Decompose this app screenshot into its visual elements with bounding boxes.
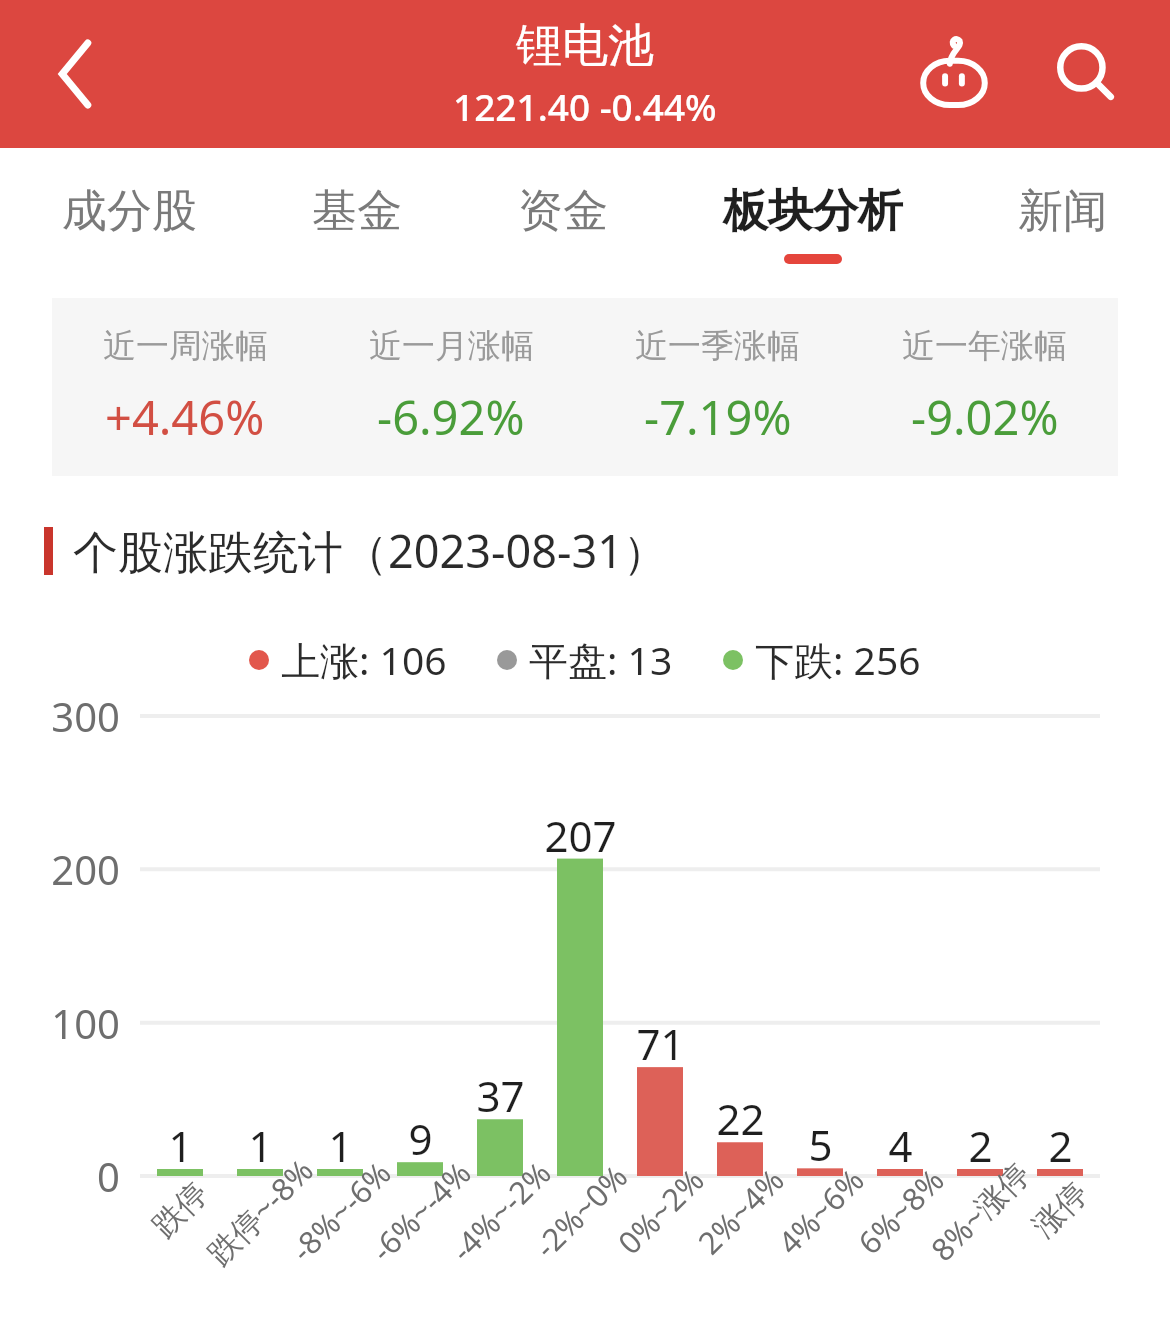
- staticText: 成分股: [62, 183, 197, 240]
- button[interactable]: 近一周涨幅: [52, 298, 318, 476]
- staticText: 新闻: [1018, 183, 1108, 240]
- staticText: -6%~-4%: [361, 1152, 480, 1270]
- staticText: 4: [888, 1117, 913, 1174]
- staticText: 1: [248, 1117, 273, 1174]
- button[interactable]: 资金: [512, 177, 614, 270]
- staticText: 近一月涨幅: [369, 325, 534, 367]
- button[interactable]: 近一月涨幅: [318, 298, 584, 476]
- staticText: -7.19%: [644, 385, 792, 449]
- staticText: 0: [97, 1149, 120, 1203]
- button[interactable]: 近一季涨幅: [584, 298, 851, 476]
- staticText: 跌停: [144, 1174, 216, 1245]
- staticText: -6.92%: [377, 385, 525, 449]
- button[interactable]: 平盘: 13: [497, 633, 673, 686]
- button[interactable]: Search: [1038, 26, 1134, 122]
- button[interactable]: 近一年涨幅: [851, 298, 1118, 476]
- staticText: 2: [1048, 1117, 1073, 1174]
- staticText: 37: [476, 1067, 525, 1124]
- staticText: 1: [168, 1117, 193, 1174]
- button[interactable]: 上涨: 106: [249, 633, 447, 686]
- staticText: 207: [544, 807, 617, 864]
- staticText: 近一周涨幅: [103, 325, 268, 367]
- button[interactable]: 下跌: 256: [723, 633, 921, 686]
- staticText: 5: [808, 1116, 833, 1173]
- staticText: 4%~6%: [768, 1159, 872, 1263]
- staticText: 平盘: 13: [529, 633, 673, 686]
- button[interactable]: AI assistant: [906, 26, 1002, 122]
- staticText: 下跌: 256: [755, 633, 921, 686]
- staticText: -8%~-6%: [281, 1152, 400, 1270]
- staticText: 200: [51, 842, 120, 896]
- button[interactable]: 基金: [306, 177, 408, 270]
- staticText: 近一季涨幅: [635, 325, 800, 367]
- staticText: 近一年涨幅: [902, 325, 1067, 367]
- staticText: 100: [51, 996, 120, 1050]
- staticText: 资金: [518, 183, 608, 240]
- staticText: 71: [636, 1015, 685, 1072]
- staticText: 板块分析: [723, 183, 903, 240]
- staticText: 锂电池: [516, 17, 654, 75]
- staticText: 300: [51, 689, 120, 743]
- staticText: 基金: [312, 183, 402, 240]
- button[interactable]: 成分股: [56, 177, 203, 270]
- button[interactable]: 板块分析: [717, 177, 909, 270]
- staticText: 0%~2%: [608, 1159, 712, 1263]
- staticText: 8%~涨停: [921, 1152, 1039, 1270]
- staticText: -9.02%: [911, 385, 1059, 449]
- staticText: 2: [968, 1117, 993, 1174]
- staticText: 9: [408, 1110, 433, 1167]
- staticText: 上涨: 106: [281, 633, 447, 686]
- staticText: 跌停~-8%: [198, 1149, 322, 1273]
- staticText: 1: [328, 1117, 353, 1174]
- button[interactable]: Back: [28, 27, 122, 121]
- staticText: 涨停: [1024, 1174, 1096, 1245]
- staticText: -4%~-2%: [441, 1152, 560, 1270]
- staticText: 2%~4%: [688, 1159, 792, 1263]
- staticText: 1221.40 -0.44%: [453, 81, 717, 131]
- staticText: 22: [716, 1090, 765, 1147]
- staticText: -2%~0%: [525, 1155, 636, 1266]
- staticText: +4.46%: [105, 385, 265, 449]
- staticText: 个股涨跌统计（2023-08-31）: [73, 520, 668, 581]
- button[interactable]: 新闻: [1012, 177, 1114, 270]
- staticText: 6%~8%: [848, 1159, 952, 1263]
